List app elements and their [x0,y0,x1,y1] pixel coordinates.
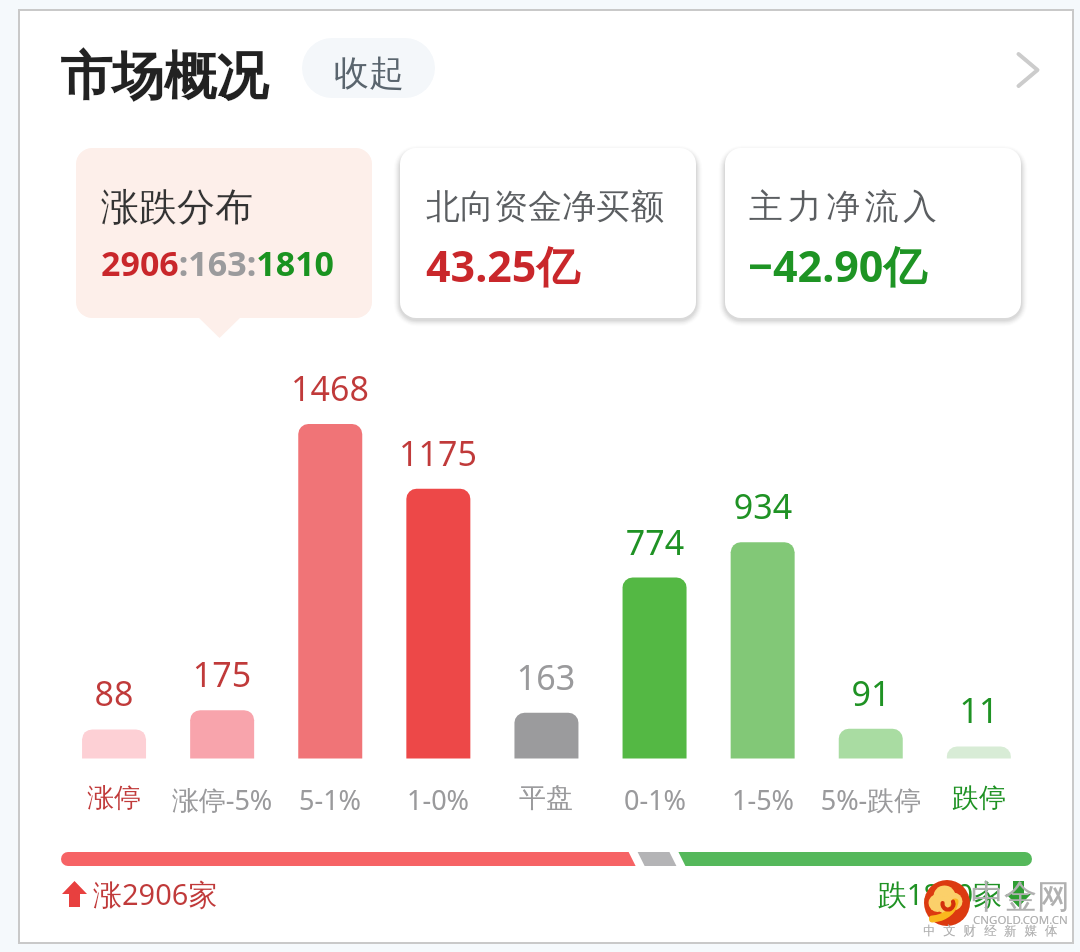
button[interactable] [400,148,696,318]
staticText: 934 [703,483,823,952]
staticText: 1175 [378,430,498,952]
staticText: 涨停 [50,781,178,952]
button[interactable]: 收起 [302,38,435,98]
staticText: 收起 [334,51,404,95]
staticText: −42.90亿 [748,236,1008,952]
button[interactable]: Expand market overview [1004,43,1056,99]
staticText: 2906:163:1810 [101,240,335,286]
staticText: 中文财经新媒体 [923,923,1080,952]
staticText: 涨跌分布 [101,183,301,952]
staticText: 88 [54,670,174,952]
staticText: 1468 [270,365,390,952]
staticText: 1-5% [699,781,827,952]
button[interactable] [725,148,1021,318]
staticText: 涨2906家 [93,874,353,952]
staticText: CNGOLD.COM.CN [973,912,1080,952]
staticText: 43.25亿 [426,236,686,952]
staticText: 0-1% [591,781,719,952]
staticText: 市场概况 [60,44,320,952]
staticText: 11 [919,687,1039,952]
button[interactable] [76,148,372,318]
staticText: 平盘 [482,781,610,952]
staticText: 跌1810家 [742,874,1002,952]
staticText: 5%-跌停 [807,781,935,952]
staticText: 163 [486,654,606,952]
staticText: 主力净流入 [749,185,1009,952]
staticText: 中金网 [971,876,1080,952]
staticText: 175 [162,651,282,952]
staticText: 774 [595,519,715,952]
staticText: 1-0% [374,781,502,952]
staticText: 北向资金净买额 [426,185,686,952]
staticText: 跌停 [915,781,1043,952]
staticText: 涨停-5% [158,781,286,952]
staticText: 91 [811,670,931,952]
staticText: 5-1% [266,781,394,952]
